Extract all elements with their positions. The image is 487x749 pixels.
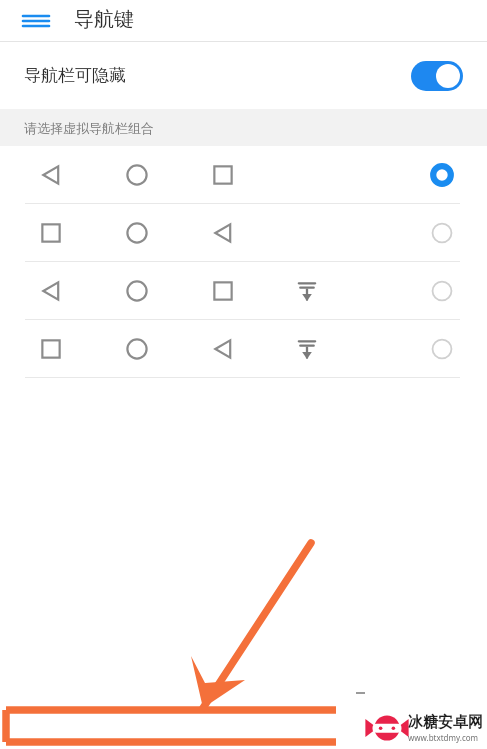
button[interactable] [0,204,487,262]
staticText: 导航键 [74,7,134,32]
button[interactable]: Hide navigation bar toggle [411,61,463,91]
staticText: 冰糖安卓网 [408,713,483,732]
button[interactable] [0,320,487,378]
staticText: 请选择虚拟导航栏组合 [24,120,154,136]
button[interactable]: 导航栏可隐藏 [0,42,487,109]
button[interactable] [0,262,487,320]
button[interactable] [0,146,487,204]
button[interactable]: Menu [18,4,54,38]
staticText: 导航栏可隐藏 [24,65,126,86]
staticText: www.btxtdmy.com [408,732,479,743]
